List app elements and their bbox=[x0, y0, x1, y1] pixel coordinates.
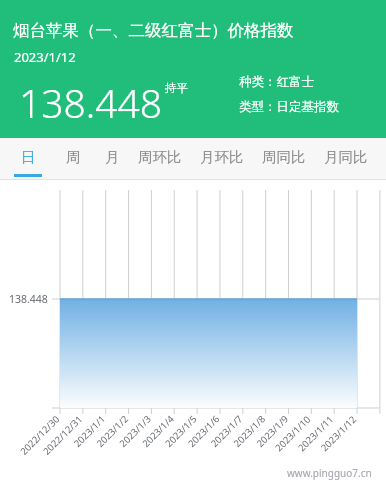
staticText: 种类：红富士 bbox=[239, 74, 314, 90]
staticText: 月 bbox=[105, 148, 120, 166]
staticText: 138.448 bbox=[19, 76, 163, 129]
button[interactable]: 周环比 bbox=[129, 138, 191, 180]
staticText: 持平 bbox=[165, 81, 188, 95]
staticText: 烟台苹果（一、二级红富士）价格指数 bbox=[13, 20, 294, 41]
button[interactable]: 月同比 bbox=[315, 138, 377, 180]
button[interactable]: 周 bbox=[57, 138, 90, 180]
staticText: 月环比 bbox=[200, 148, 244, 166]
staticText: 月同比 bbox=[324, 148, 368, 166]
staticText: 周 bbox=[66, 148, 81, 166]
button[interactable]: 周同比 bbox=[253, 138, 315, 180]
staticText: 周同比 bbox=[262, 148, 306, 166]
button[interactable]: 月 bbox=[96, 138, 129, 180]
staticText: 类型：日定基指数 bbox=[239, 99, 339, 115]
button[interactable]: 日 bbox=[5, 138, 51, 180]
button[interactable]: 月环比 bbox=[191, 138, 253, 180]
staticText: 2023/1/12 bbox=[14, 48, 76, 66]
staticText: 日 bbox=[21, 148, 36, 166]
staticText: 周环比 bbox=[138, 148, 182, 166]
other: 烟台苹果价格指数走势图 bbox=[0, 180, 386, 485]
